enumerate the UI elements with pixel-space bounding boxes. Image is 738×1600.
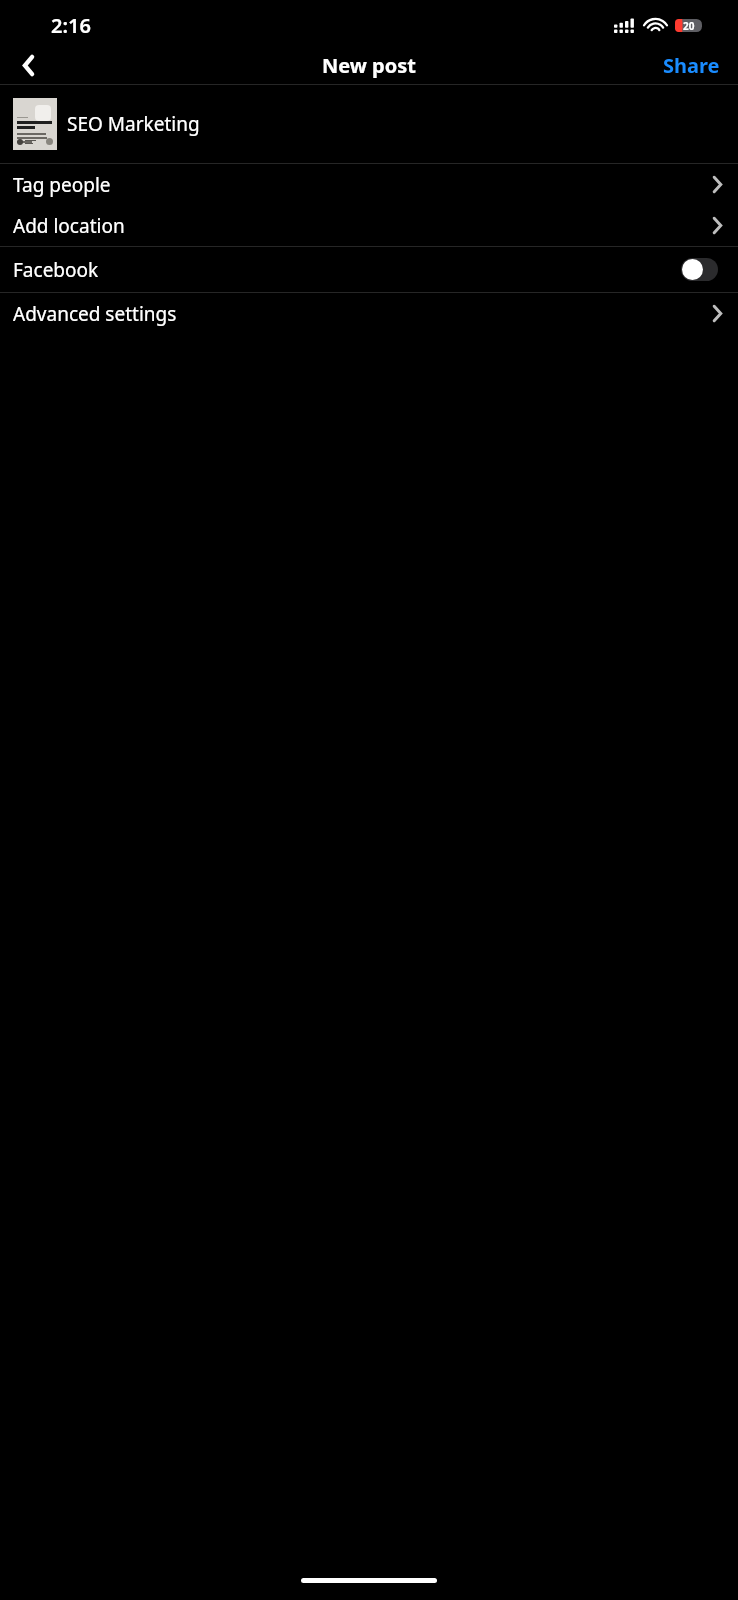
staticText: Share: [663, 52, 720, 78]
staticText: 2:16: [51, 12, 91, 39]
staticText: New post: [322, 52, 416, 79]
button[interactable]: Facebook: [0, 247, 738, 292]
button[interactable]: Share to Facebook: [681, 258, 718, 281]
staticText: Tag people: [13, 172, 111, 198]
staticText: Facebook: [13, 257, 99, 283]
staticText: Advanced settings: [13, 301, 177, 327]
staticText: 20: [683, 19, 695, 32]
staticText: Add location: [13, 213, 125, 239]
button[interactable]: Share: [645, 46, 738, 84]
staticText: SEO Marketing: [67, 111, 200, 137]
button[interactable]: Back: [0, 46, 56, 84]
button[interactable]: Tag people: [0, 164, 738, 205]
button[interactable]: Add location: [0, 205, 738, 246]
button[interactable]: SEO Marketing: [0, 85, 738, 163]
button[interactable]: Advanced settings: [0, 293, 738, 334]
